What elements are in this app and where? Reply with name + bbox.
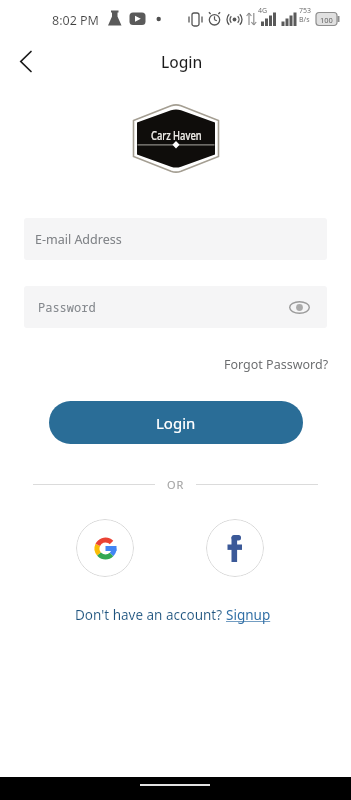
staticText: 8:02 PM <box>52 12 99 29</box>
staticText: Don't have an account? <box>75 606 226 624</box>
staticText: 753 <box>299 6 312 16</box>
button[interactable]: Forgot Password? <box>224 356 329 373</box>
button[interactable]: E-mail Address <box>24 218 327 260</box>
staticText: B/s <box>299 15 310 25</box>
button[interactable]: Signup <box>226 606 271 624</box>
staticText: Password <box>38 299 96 315</box>
staticText: OR <box>167 477 185 492</box>
staticText: E-mail Address <box>35 231 122 248</box>
button[interactable]: Password <box>24 286 327 328</box>
staticText: Login <box>156 413 196 433</box>
button[interactable] <box>206 519 264 577</box>
staticText: Login <box>161 51 203 72</box>
staticText: Carz Haven <box>151 126 202 144</box>
button[interactable] <box>76 519 134 577</box>
staticText: Signup <box>226 606 271 624</box>
staticText: 100 <box>320 15 333 25</box>
button[interactable] <box>8 44 44 80</box>
staticText: 4G <box>258 6 268 16</box>
button[interactable]: Login <box>49 401 303 444</box>
staticText: Forgot Password? <box>224 356 329 373</box>
